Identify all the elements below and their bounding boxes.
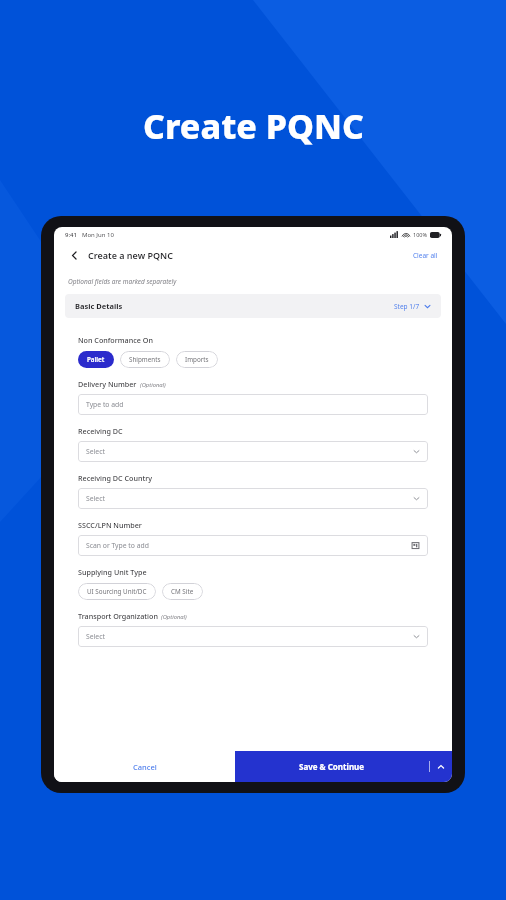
button[interactable]: Shipments [120,351,170,368]
staticText: Transport Organization [78,611,158,621]
button[interactable]: UI Sourcing Unit/DC [78,583,156,600]
button[interactable]: Pallet [78,351,114,368]
button[interactable]: Clear all [411,247,440,264]
staticText: Non Conformance On [78,335,153,345]
staticText: UI Sourcing Unit/DC [87,587,147,596]
staticText: Receiving DC [78,426,123,436]
staticText: Step 1/7 [394,302,420,311]
staticText: 100% [413,231,428,238]
staticText: Delivery Number [78,379,137,389]
button[interactable]: More options [430,751,452,782]
button[interactable]: Select [78,488,428,509]
button[interactable]: Save & Continue [235,751,429,782]
staticText: CM Site [171,587,194,596]
staticText: 9:41 [65,231,77,239]
staticText: (Optional) [161,613,187,621]
staticText: Receiving DC Country [78,473,153,483]
button[interactable]: Cancel [54,751,235,782]
button[interactable]: CM Site [162,583,203,600]
staticText: Select [86,632,105,641]
button[interactable]: Imports [176,351,218,368]
staticText: Type to add [86,400,124,409]
staticText: Cancel [133,762,157,772]
button[interactable]: Scan or Type to add [78,535,428,556]
staticText: Supplying Unit Type [78,567,147,577]
button[interactable]: Select [78,626,428,647]
staticText: Clear all [413,251,438,260]
staticText: Scan or Type to add [86,541,149,550]
button[interactable]: Select [78,441,428,462]
button[interactable]: Back [66,247,82,263]
staticText: Create PQNC [143,103,364,149]
staticText: Imports [185,355,209,364]
staticText: Mon Jun 10 [82,231,114,239]
button[interactable]: Basic Details [65,294,441,318]
staticText: Shipments [129,355,161,364]
staticText: Pallet [87,355,105,364]
staticText: Save & Continue [299,761,365,772]
staticText: Create a new PQNC [88,249,173,261]
staticText: Select [86,494,105,503]
staticText: Basic Details [75,301,123,311]
button[interactable]: Type to add [78,394,428,415]
staticText: (Optional) [140,381,166,389]
staticText: Optional fields are marked separately [68,277,177,286]
staticText: SSCC/LPN Number [78,520,142,530]
staticText: Select [86,447,105,456]
